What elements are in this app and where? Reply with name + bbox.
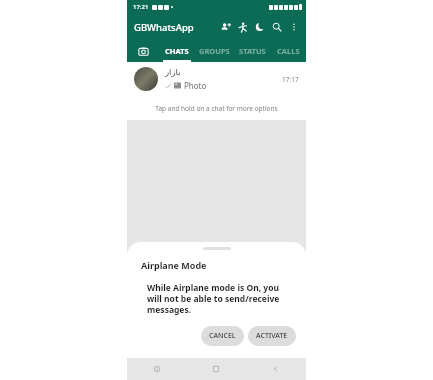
staticText: 17:17 — [282, 75, 299, 84]
button[interactable]: CALLS — [271, 40, 306, 62]
button[interactable]: STATUS — [233, 40, 271, 62]
button[interactable]: Hide chats — [234, 14, 251, 40]
staticText: Photo — [184, 80, 207, 91]
button[interactable]: More options — [285, 14, 302, 40]
button[interactable]: CANCEL — [201, 326, 244, 346]
staticText: Airplane Mode — [141, 259, 207, 271]
button[interactable]: Search — [268, 14, 285, 40]
button[interactable]: بازار — [127, 62, 306, 96]
button[interactable]: GROUPS — [195, 40, 233, 62]
staticText: CALLS — [277, 46, 300, 56]
staticText: بازار — [165, 67, 181, 77]
staticText: STATUS — [239, 46, 266, 56]
button[interactable]: CHATS — [159, 40, 195, 62]
staticText: Tap and hold on a chat for more options — [155, 104, 278, 113]
staticText: ACTIVATE — [256, 331, 288, 341]
staticText: While Airplane mode is On, you will not … — [147, 282, 290, 315]
staticText: CHATS — [165, 46, 189, 56]
staticText: 17:21 — [133, 3, 149, 11]
staticText: GBWhatsApp — [134, 21, 194, 34]
button[interactable]: Night mode — [251, 14, 268, 40]
button[interactable]: Add contact — [217, 14, 234, 40]
staticText: GROUPS — [199, 46, 230, 56]
button[interactable]: Home — [186, 358, 246, 380]
button[interactable]: Recents — [127, 358, 186, 380]
button[interactable]: Camera — [127, 40, 159, 62]
button[interactable]: ACTIVATE — [248, 326, 296, 346]
staticText: CANCEL — [209, 331, 236, 341]
